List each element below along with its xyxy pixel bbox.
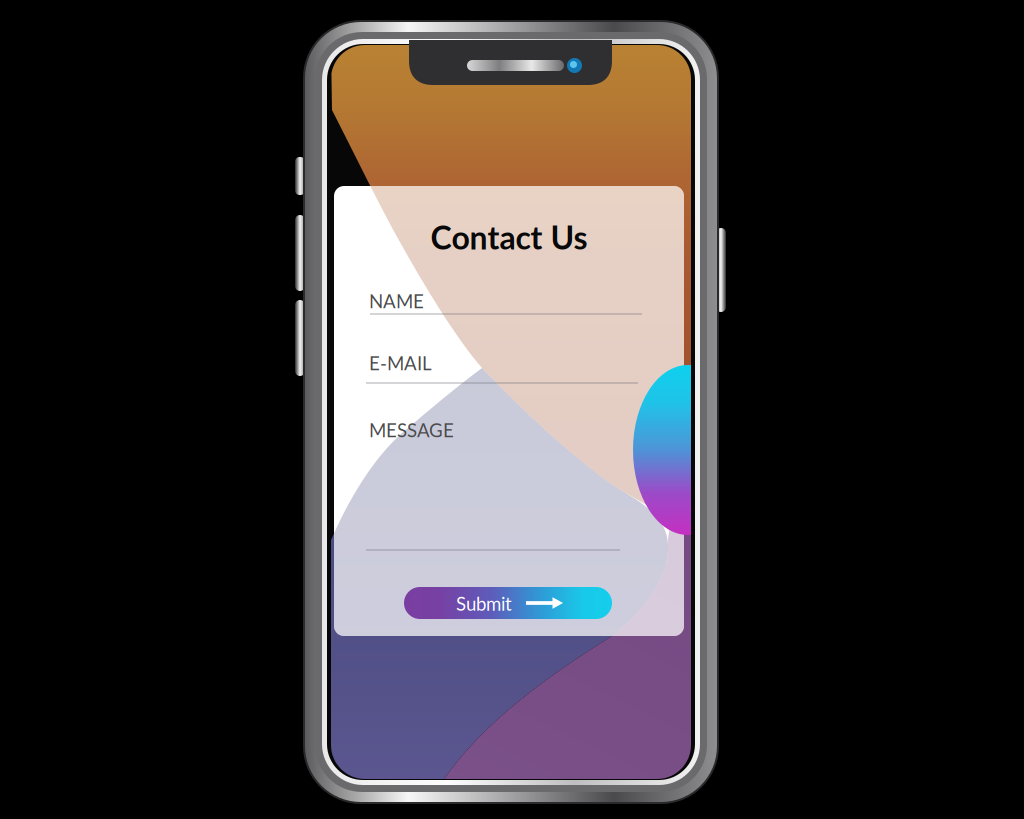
staticText: NAME (369, 290, 424, 312)
staticText: E-MAIL (369, 352, 432, 374)
staticText: MESSAGE (369, 419, 454, 441)
button[interactable]: Submit (404, 587, 612, 619)
staticText: Submit (456, 592, 512, 615)
staticText: Contact Us (430, 218, 587, 256)
